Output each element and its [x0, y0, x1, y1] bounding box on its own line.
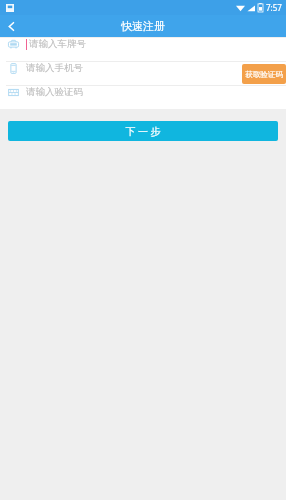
- staticText: 快速注册: [121, 19, 165, 33]
- button[interactable]: 请输入验证码: [0, 86, 286, 109]
- staticText: 请输入手机号: [26, 62, 83, 74]
- staticText: 下 一 步: [125, 124, 161, 138]
- button[interactable]: Back: [0, 15, 22, 37]
- button[interactable]: 请输入车牌号: [0, 38, 286, 61]
- button[interactable]: 获取验证码: [242, 64, 286, 84]
- button[interactable]: 请输入手机号: [0, 62, 286, 85]
- button[interactable]: 下 一 步: [8, 121, 278, 141]
- staticText: 请输入验证码: [26, 86, 83, 98]
- staticText: 请输入车牌号: [29, 38, 86, 50]
- staticText: 获取验证码: [245, 70, 283, 79]
- staticText: 7:57: [266, 2, 282, 13]
